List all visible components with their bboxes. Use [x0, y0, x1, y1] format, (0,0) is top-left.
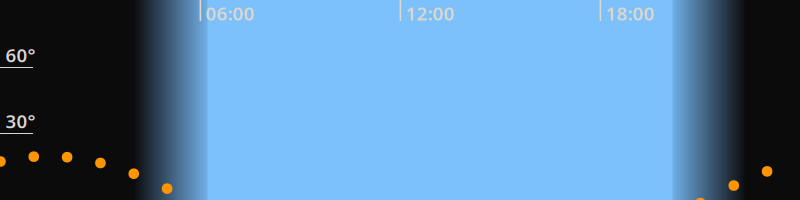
staticText: 06:00	[205, 1, 254, 26]
staticText: 12:00	[405, 1, 454, 26]
staticText: 18:00	[605, 1, 654, 26]
button[interactable]: Sun elevation chart	[0, 0, 800, 200]
staticText: 60°	[5, 43, 35, 67]
staticText: 30°	[5, 109, 35, 133]
